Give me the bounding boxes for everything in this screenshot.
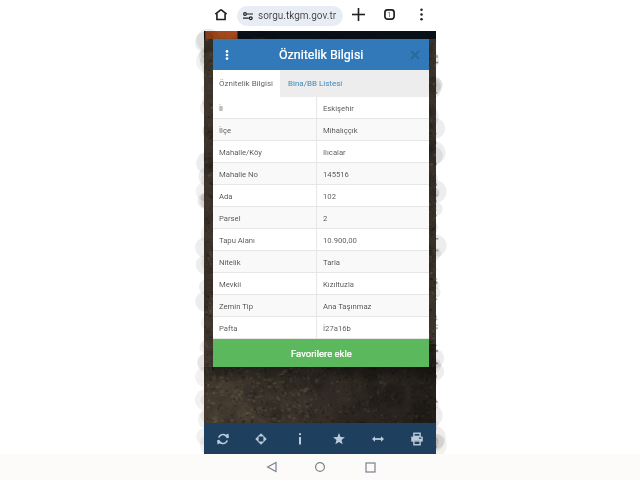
button[interactable]: Home [296, 454, 343, 480]
staticText: Mahalle/Köy [219, 148, 262, 157]
staticText: Ana Taşınmaz [323, 302, 372, 311]
button[interactable]: Home [210, 4, 231, 25]
staticText: İlçe [219, 126, 232, 135]
staticText: Öznitelik Bilgisi [219, 79, 274, 88]
staticText: Eskişehir [323, 104, 354, 113]
button[interactable]: Favorilere ekle [213, 339, 429, 367]
staticText: Bina/BB Listesi [288, 79, 343, 88]
staticText: 102 [323, 192, 336, 201]
button[interactable]: Close [407, 47, 423, 63]
staticText: Parsel [219, 214, 241, 223]
button[interactable]: More options [411, 4, 431, 24]
button[interactable]: Back [248, 454, 295, 480]
button[interactable]: Info [280, 423, 319, 454]
staticText: Kızıltuzla [323, 280, 354, 289]
staticText: 10.900,00 [323, 236, 357, 245]
button[interactable]: Öznitelik Bilgisi [213, 70, 280, 97]
button[interactable]: Menu [217, 39, 237, 70]
button[interactable]: Tabs [379, 4, 399, 24]
button[interactable]: Bina/BB Listesi [280, 70, 355, 97]
button[interactable]: Measure [358, 423, 397, 454]
staticText: Favorilere ekle [291, 348, 352, 359]
button[interactable]: Print [397, 423, 436, 454]
staticText: Mihalıççık [323, 126, 358, 135]
staticText: Öznitelik Bilgisi [279, 47, 364, 62]
button[interactable]: Locate me [242, 423, 280, 454]
staticText: Ada [219, 192, 233, 201]
staticText: sorgu.tkgm.gov.tr [258, 10, 337, 22]
staticText: İ27a16b [323, 324, 351, 333]
button[interactable]: Refresh [204, 423, 242, 454]
staticText: Zemin Tip [219, 302, 253, 311]
staticText: Ilıcalar [323, 148, 346, 157]
staticText: 1 [387, 10, 392, 19]
button[interactable]: sorgu.tkgm.gov.tr [237, 6, 343, 26]
staticText: 2 [323, 214, 328, 223]
button[interactable]: New tab [348, 4, 368, 24]
staticText: Nitelik [219, 258, 241, 267]
staticText: Pafta [219, 324, 238, 333]
staticText: Tapu Alanı [219, 236, 256, 245]
button[interactable]: Favorites [319, 423, 358, 454]
staticText: Tarla [323, 258, 340, 267]
staticText: Mahalle No [219, 170, 258, 179]
staticText: 145516 [323, 170, 349, 179]
staticText: Mevkii [219, 280, 242, 289]
button[interactable]: Recents [347, 454, 394, 480]
staticText: İl [219, 104, 223, 113]
